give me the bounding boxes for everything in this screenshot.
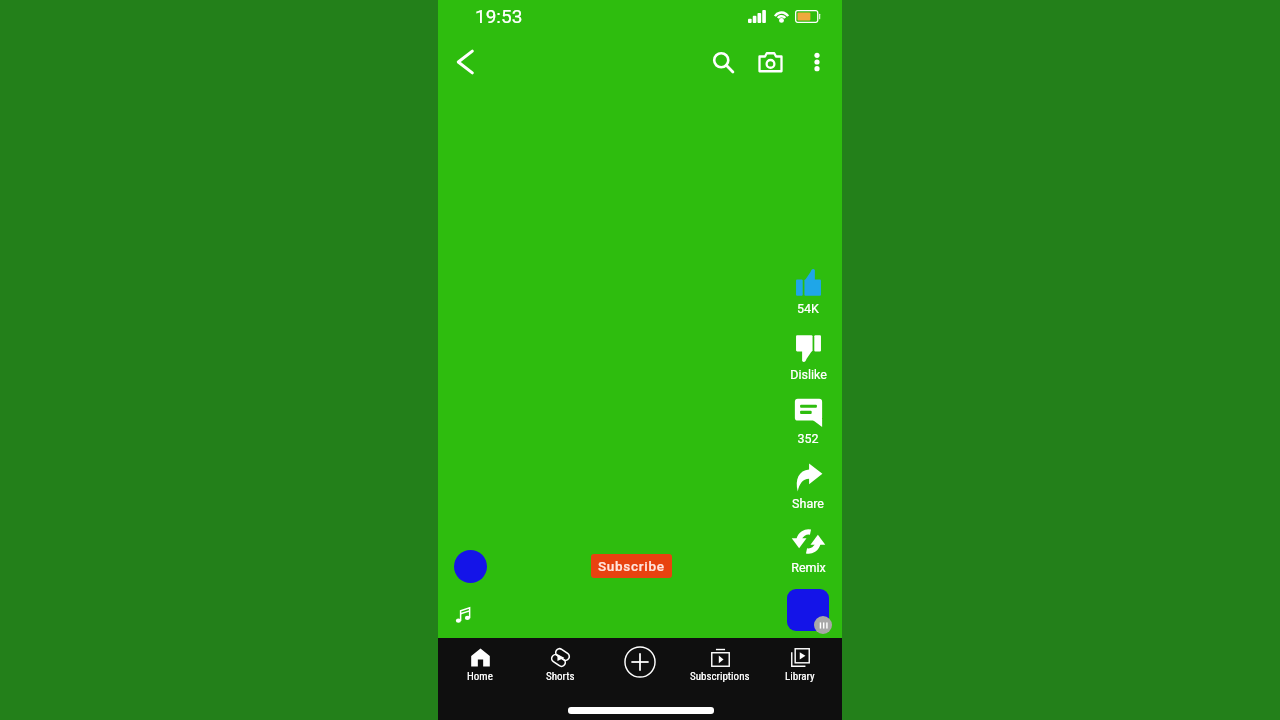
button[interactable]: Camera: [750, 42, 790, 82]
button[interactable]: Back: [442, 40, 486, 84]
staticText: Subscriptions: [690, 670, 750, 683]
staticText: Share: [792, 496, 824, 511]
staticText: Library: [785, 670, 815, 683]
button[interactable]: Channel avatar: [454, 550, 487, 583]
button[interactable]: Subscribe: [591, 554, 672, 578]
button[interactable]: Home: [440, 638, 520, 688]
button[interactable]: Share: [782, 459, 834, 511]
staticText: Home: [467, 670, 493, 683]
button[interactable]: Search: [703, 42, 743, 82]
button[interactable]: Shorts: [520, 638, 600, 688]
staticText: Subscribe: [598, 558, 665, 574]
button[interactable]: Subscriptions: [680, 638, 760, 688]
button[interactable]: Create: [600, 638, 680, 688]
button[interactable]: Remix audio: [787, 589, 829, 631]
button[interactable]: 352: [782, 394, 834, 446]
staticText: 352: [797, 431, 819, 446]
button[interactable]: Library: [760, 638, 840, 688]
button[interactable]: 54K: [782, 264, 834, 316]
staticText: 19:53: [475, 5, 523, 27]
button[interactable]: Dislike: [782, 330, 834, 382]
staticText: 54K: [797, 301, 819, 316]
staticText: Shorts: [546, 670, 575, 683]
staticText: Remix: [791, 560, 826, 575]
button[interactable]: More options: [797, 42, 837, 82]
button[interactable]: Remix: [782, 523, 834, 575]
staticText: Dislike: [790, 367, 827, 382]
